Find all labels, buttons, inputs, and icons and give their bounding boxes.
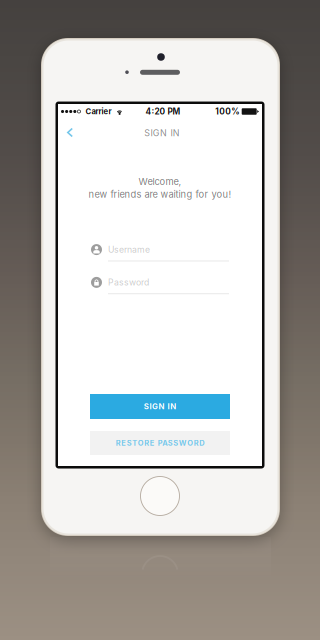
staticText: SIGN IN [144,402,176,411]
staticText: new friends are waiting for you! [88,189,231,200]
staticText: Password [108,277,149,288]
button[interactable]: Password [91,276,229,294]
staticText: Carrier [85,107,111,116]
staticText: Username [108,244,150,255]
button[interactable]: Username [91,243,229,261]
staticText: SIGN IN [144,128,180,138]
staticText: 100% [215,106,239,116]
button[interactable]: SIGN IN [90,394,230,419]
staticText: Welcome, [138,176,181,187]
button[interactable]: RESTORE PASSWORD [90,431,230,455]
staticText: RESTORE PASSWORD [116,438,204,447]
button[interactable]: Back [60,121,80,143]
staticText: 4:20 PM [145,106,180,116]
